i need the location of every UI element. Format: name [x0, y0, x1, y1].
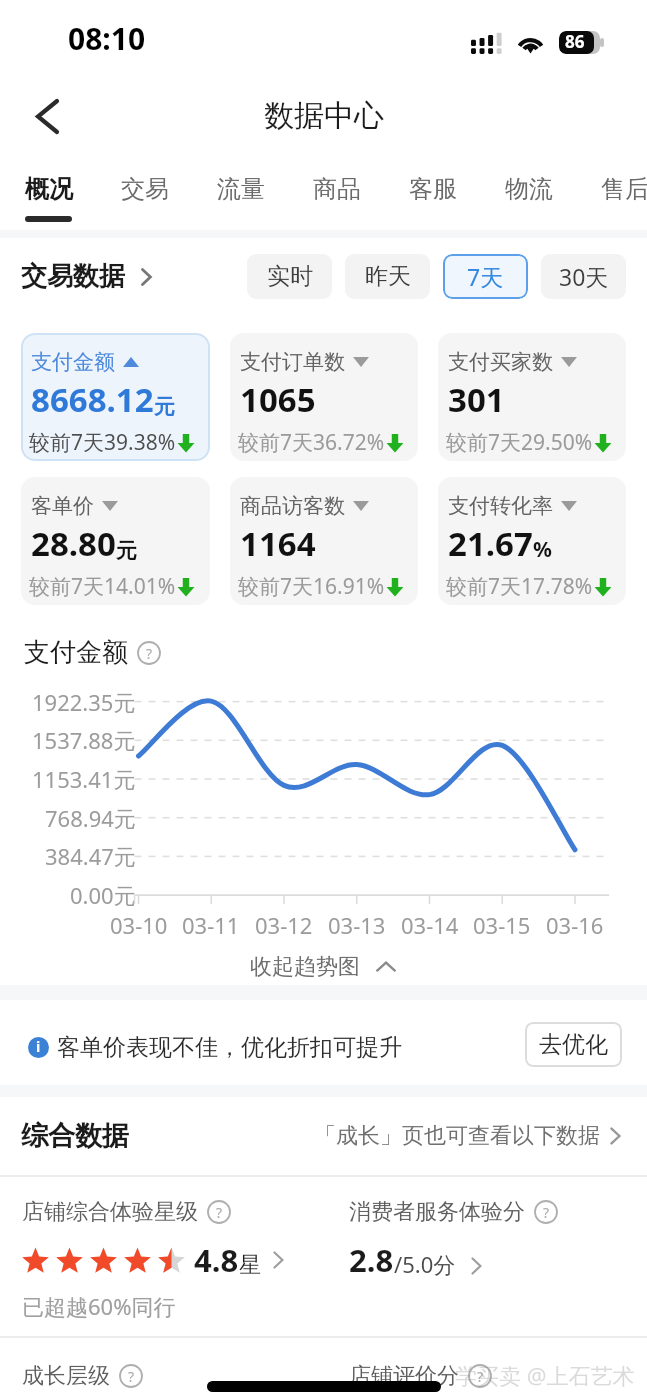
staticText: 已超越60%同行 [22, 1291, 176, 1321]
button[interactable]: 成长层级 [22, 1362, 143, 1390]
staticText: 03-16 [546, 910, 604, 940]
button[interactable]: 客服 [409, 152, 485, 230]
button[interactable]: 支付订单数 [230, 333, 418, 461]
staticText: 支付金额 [31, 349, 115, 375]
staticText: 支付订单数 [240, 349, 345, 375]
staticText: 21.67 [448, 521, 533, 566]
staticText: 30天 [559, 261, 609, 292]
staticText: 1922.35元 [32, 687, 136, 715]
staticText: 昨天 [365, 262, 411, 291]
staticText: 384.47元 [45, 841, 136, 869]
staticText: 301 [448, 377, 505, 422]
button[interactable]: 商品 [313, 152, 389, 230]
button[interactable]: 7天 [443, 254, 528, 299]
staticText: 商品 [313, 174, 361, 204]
button[interactable]: 交易数据 [21, 260, 157, 293]
staticText: 较前7天39.38% [29, 428, 176, 457]
button[interactable]: 支付金额 [21, 333, 210, 461]
button[interactable]: 概况 [25, 152, 101, 230]
staticText: 08:10 [68, 18, 146, 59]
staticText: 03-10 [110, 910, 168, 940]
button[interactable]: 收起趋势图 [0, 944, 647, 989]
staticText: ? [477, 1367, 484, 1386]
staticText: 交易数据 [21, 260, 125, 293]
staticText: 物流 [505, 174, 553, 204]
staticText: 数据中心 [264, 97, 384, 135]
button[interactable]: 交易 [121, 152, 197, 230]
button[interactable]: 支付买家数 [438, 333, 626, 461]
staticText: 学买卖 @上石艺术 [455, 1360, 635, 1390]
staticText: 商品访客数 [240, 493, 345, 519]
staticText: 8668.12 [31, 377, 154, 422]
staticText: 客服 [409, 174, 457, 204]
staticText: ? [128, 1367, 135, 1386]
button[interactable]: 商品访客数 [230, 477, 418, 605]
staticText: 收起趋势图 [250, 953, 360, 981]
staticText: 28.80 [31, 521, 116, 566]
staticText: 客单价 [31, 493, 94, 519]
staticText: 支付转化率 [448, 493, 553, 519]
button[interactable]: 物流 [505, 152, 581, 230]
staticText: /5.0分 [394, 1249, 456, 1279]
staticText: 星 [239, 1251, 261, 1279]
button[interactable]: 流量 [217, 152, 293, 230]
staticText: 03-14 [401, 910, 459, 940]
staticText: 较前7天36.72% [238, 428, 385, 457]
button[interactable]: 30天 [541, 254, 626, 299]
staticText: 768.94元 [45, 803, 136, 831]
staticText: 86 [565, 31, 585, 53]
staticText: 支付金额 [24, 636, 128, 669]
staticText: 流量 [217, 174, 265, 204]
button[interactable]: 昨天 [345, 254, 430, 299]
staticText: 元 [154, 394, 175, 420]
staticText: 较前7天16.91% [238, 572, 385, 601]
staticText: 概况 [25, 174, 73, 204]
button[interactable]: 客单价 [21, 477, 210, 605]
staticText: % [533, 535, 552, 564]
staticText: 店铺评价分 [349, 1362, 459, 1390]
staticText: 交易 [121, 174, 169, 204]
staticText: 03-15 [473, 910, 531, 940]
staticText: 1537.88元 [32, 725, 136, 753]
button[interactable]: Back [18, 87, 76, 145]
staticText: 「成长」页也可查看以下数据 [314, 1122, 600, 1150]
staticText: 综合数据 [21, 1119, 129, 1153]
staticText: 元 [116, 538, 137, 564]
staticText: 03-13 [328, 910, 386, 940]
staticText: 消费者服务体验分 [349, 1198, 525, 1226]
staticText: ? [216, 1203, 223, 1222]
staticText: i [36, 1037, 41, 1056]
staticText: 1164 [240, 521, 316, 566]
staticText: 2.8 [349, 1239, 394, 1281]
button[interactable]: 店铺评价分 [349, 1362, 492, 1390]
staticText: 支付买家数 [448, 349, 553, 375]
button[interactable]: 支付转化率 [438, 477, 626, 605]
button[interactable]: 去优化 [525, 1022, 622, 1067]
staticText: 较前7天17.78% [446, 572, 593, 601]
staticText: 7天 [467, 261, 504, 292]
staticText: 0.00元 [70, 880, 136, 908]
staticText: 03-11 [182, 910, 240, 940]
button[interactable]: 消费者服务体验分 [349, 1198, 558, 1281]
button[interactable]: 售后 [601, 152, 647, 230]
staticText: ? [146, 644, 153, 663]
button[interactable]: 实时 [247, 254, 332, 299]
staticText: 1153.41元 [32, 764, 136, 792]
staticText: 去优化 [539, 1030, 608, 1059]
staticText: 成长层级 [22, 1362, 110, 1390]
staticText: 店铺综合体验星级 [22, 1198, 198, 1226]
staticText: 03-12 [255, 910, 313, 940]
staticText: 较前7天14.01% [29, 572, 176, 601]
button[interactable]: 店铺综合体验星级 [22, 1198, 289, 1321]
button[interactable]: 「成长」页也可查看以下数据 [314, 1122, 626, 1150]
staticText: 4.8 [194, 1239, 239, 1281]
staticText: 1065 [240, 377, 316, 422]
staticText: ? [543, 1203, 550, 1222]
staticText: 客单价表现不佳，优化折扣可提升 [57, 1033, 402, 1062]
staticText: 较前7天29.50% [446, 428, 593, 457]
staticText: 售后 [601, 174, 647, 204]
staticText: 实时 [267, 262, 313, 291]
